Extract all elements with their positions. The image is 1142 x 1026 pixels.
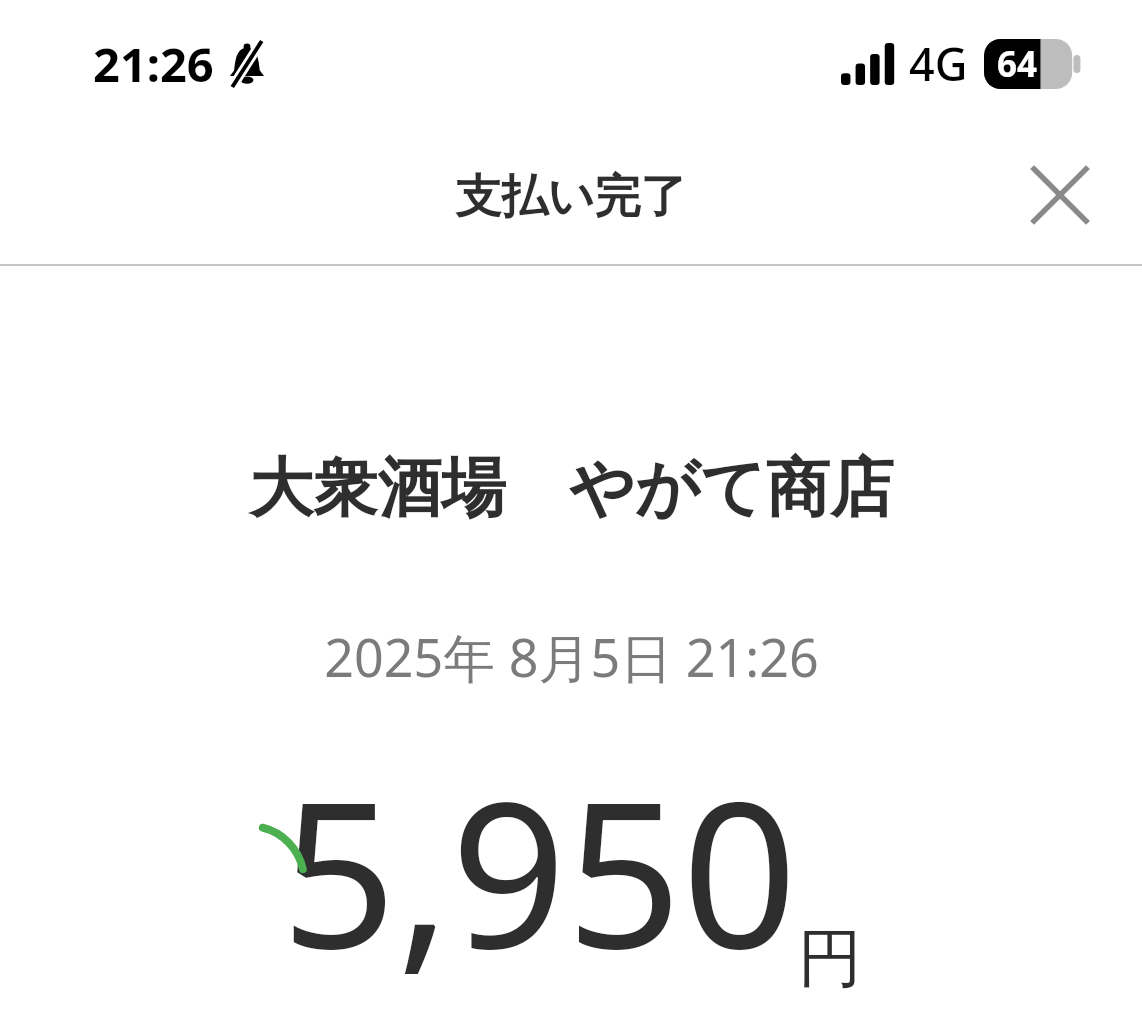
staticText: 2025年 8月5日 21:26: [324, 621, 819, 692]
staticText: 支払い完了: [455, 168, 687, 226]
staticText: 円: [798, 918, 862, 999]
staticText: 大衆酒場 やがて商店: [249, 442, 894, 529]
staticText: 4G: [909, 33, 968, 94]
button[interactable]: 閉じる: [1002, 137, 1118, 253]
staticText: 21:26: [93, 32, 214, 96]
staticText: 5,950: [281, 732, 798, 1007]
staticText: 64: [997, 40, 1038, 88]
